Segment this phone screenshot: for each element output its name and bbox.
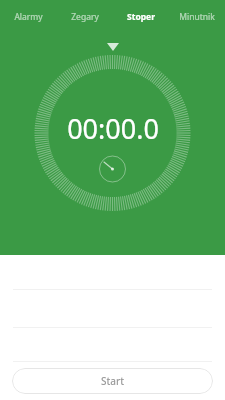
staticText: Alarmy [14, 11, 43, 23]
staticText: Zegary [71, 11, 99, 23]
button[interactable]: Minutnik [169, 0, 225, 34]
staticText: 00:00.0 [67, 110, 159, 147]
staticText: Minutnik [179, 11, 215, 23]
staticText: Stoper [127, 11, 155, 23]
button[interactable]: Zegary [57, 0, 113, 34]
button[interactable]: Stoper [113, 0, 169, 34]
button[interactable]: Alarmy [0, 0, 57, 34]
button[interactable]: Start [12, 368, 213, 394]
staticText: Start [101, 374, 125, 388]
